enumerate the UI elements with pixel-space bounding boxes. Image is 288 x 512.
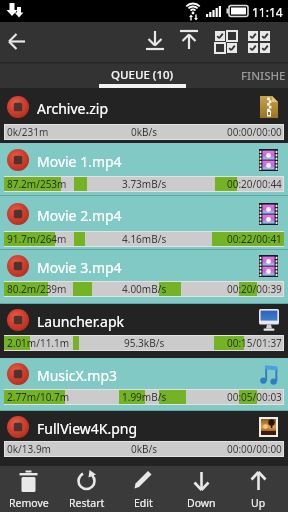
staticText: 00:05/00:03 xyxy=(227,390,282,404)
button[interactable]: Movie 1.mp4 xyxy=(0,143,288,196)
staticText: Up xyxy=(251,496,266,510)
staticText: 0kB/s xyxy=(131,442,158,456)
staticText: QUEUE (10) xyxy=(111,67,174,83)
staticText: 00:22/00:41 xyxy=(227,232,282,246)
staticText: FINISHED xyxy=(241,68,288,94)
button[interactable]: FullView4K.png xyxy=(0,411,288,466)
button[interactable]: MusicX.mp3 xyxy=(0,358,288,411)
staticText: FullView4K.png xyxy=(37,419,138,438)
staticText: Movie 1.mp4 xyxy=(37,152,122,171)
button[interactable]: Down xyxy=(173,466,230,512)
staticText: Remove xyxy=(9,496,49,510)
button[interactable] xyxy=(208,22,244,62)
staticText: 91.7m/264m xyxy=(7,232,67,246)
staticText: Movie 3.mp4 xyxy=(37,258,122,277)
button[interactable]: QUEUE (10) xyxy=(96,62,188,88)
staticText: 00:00/00:00 xyxy=(227,442,282,456)
button[interactable]: Movie 3.mp4 xyxy=(0,250,288,304)
button[interactable]: Launcher.apk xyxy=(0,304,288,358)
staticText: Restart xyxy=(69,496,105,510)
staticText: 00:20/00:44 xyxy=(227,177,282,191)
staticText: 00:15/01:37 xyxy=(227,336,282,350)
staticText: Edit xyxy=(134,496,153,510)
staticText: 4.00mB/s xyxy=(122,282,167,296)
button[interactable]: Movie 2.mp4 xyxy=(0,196,288,250)
staticText: 95.3kB/s xyxy=(124,336,165,350)
staticText: 1.99mB/s xyxy=(122,390,167,404)
staticText: Archive.zip xyxy=(37,99,108,118)
staticText: 3.73mB/s xyxy=(122,177,167,191)
staticText: Launcher.apk xyxy=(37,312,124,331)
button[interactable]: FINISHED xyxy=(238,62,288,88)
staticText: 80.2m/239m xyxy=(7,282,67,296)
button[interactable]: Remove xyxy=(0,466,57,512)
staticText: 11:14 xyxy=(252,4,283,20)
staticText: 0k/231m xyxy=(7,125,49,139)
button[interactable]: Restart xyxy=(58,466,115,512)
staticText: 4.16mB/s xyxy=(122,232,167,246)
staticText: Down xyxy=(187,496,216,510)
button[interactable]: Edit xyxy=(115,466,172,512)
button[interactable] xyxy=(242,22,278,62)
staticText: 2.01m/11.1m xyxy=(7,336,70,350)
staticText: 00:00/00:00 xyxy=(227,125,282,139)
button[interactable] xyxy=(0,22,40,62)
staticText: 00:20/00:39 xyxy=(227,282,282,296)
staticText: 0k/13.9m xyxy=(7,442,51,456)
staticText: 0kB/s xyxy=(131,125,158,139)
staticText: 2.77m/10.7m xyxy=(7,390,70,404)
button[interactable] xyxy=(138,22,172,62)
staticText: Movie 2.mp4 xyxy=(37,206,122,225)
button[interactable]: Up xyxy=(230,466,287,512)
button[interactable]: Archive.zip xyxy=(0,88,288,143)
button[interactable] xyxy=(172,22,206,62)
staticText: 87.2m/253m xyxy=(7,177,67,191)
staticText: MusicX.mp3 xyxy=(37,366,118,385)
